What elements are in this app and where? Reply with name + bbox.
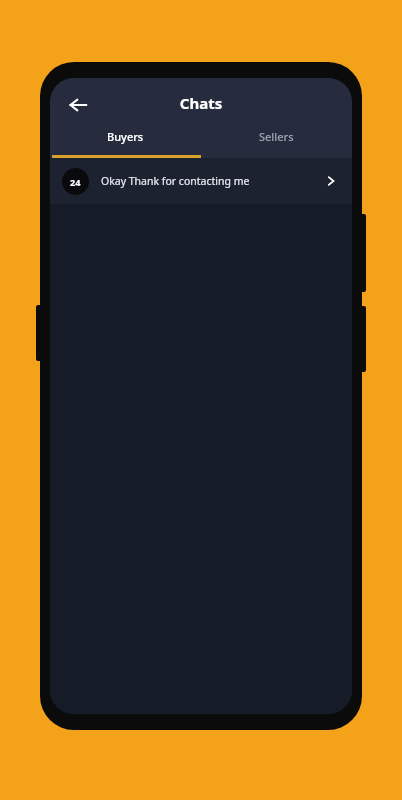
staticText: Chats	[50, 93, 352, 113]
button[interactable]: Back	[56, 83, 100, 127]
button[interactable]: 24	[50, 158, 352, 204]
staticText: Okay Thank for contacting me	[101, 174, 322, 188]
button[interactable]: Sellers	[201, 120, 352, 158]
button[interactable]: Buyers	[50, 120, 201, 158]
staticText: Buyers	[107, 129, 144, 144]
staticText: Sellers	[259, 129, 294, 144]
staticText: 24	[70, 176, 81, 188]
